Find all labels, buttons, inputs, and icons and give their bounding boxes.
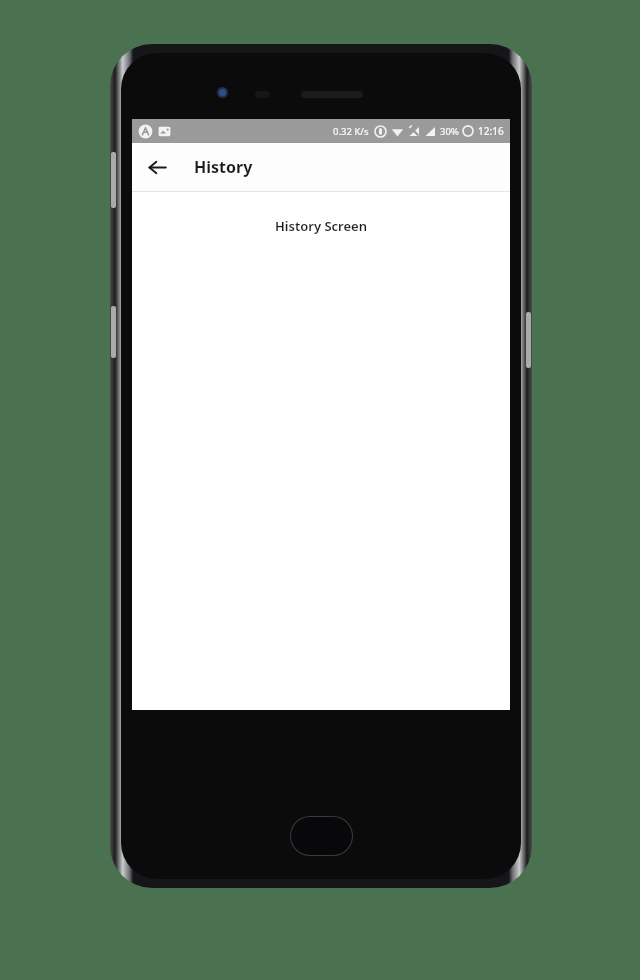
staticText: History [194, 156, 253, 178]
staticText: 12:16 [478, 124, 504, 138]
staticText: 0.32 K/s [333, 125, 369, 138]
staticText: History Screen [275, 217, 367, 235]
button[interactable]: Home [290, 816, 353, 856]
staticText: 30% [440, 125, 459, 138]
button[interactable]: Back [140, 150, 174, 184]
